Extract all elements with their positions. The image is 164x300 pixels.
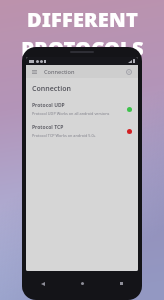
button[interactable]: Open navigation menu [30,67,39,76]
staticText: Connection [32,84,71,94]
button[interactable]: Protocol TCP [26,123,138,139]
staticText: DIFFERENT [27,6,138,33]
button[interactable]: Home [77,278,88,289]
staticText: Protocol TCP [32,124,64,131]
staticText: PROTOCOLS [21,35,144,62]
staticText: Connection [44,68,75,76]
button[interactable]: Help [124,67,134,77]
staticText: Protocol UDP [32,102,65,109]
staticText: Protocol TCP Works on android 5.0+ [32,133,96,138]
button[interactable]: Recent apps [116,278,127,289]
button[interactable]: Back [37,278,48,289]
staticText: Protocol UDP Works on all android versio… [32,111,110,116]
button[interactable]: Protocol UDP [26,101,138,117]
